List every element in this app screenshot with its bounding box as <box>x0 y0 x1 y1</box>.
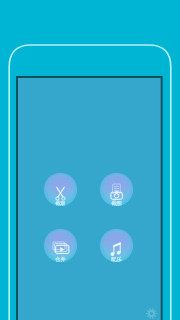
staticText: 截取 <box>55 200 66 206</box>
button[interactable]: Merge videos <box>44 229 77 262</box>
staticText: 配乐 <box>111 256 122 262</box>
button[interactable]: Screenshot <box>100 173 133 206</box>
staticText: 合并 <box>55 256 66 262</box>
button[interactable]: Trim video <box>44 173 77 206</box>
staticText: 截图 <box>111 200 122 206</box>
button[interactable]: Settings <box>146 308 157 319</box>
button[interactable]: Add music <box>100 229 133 262</box>
